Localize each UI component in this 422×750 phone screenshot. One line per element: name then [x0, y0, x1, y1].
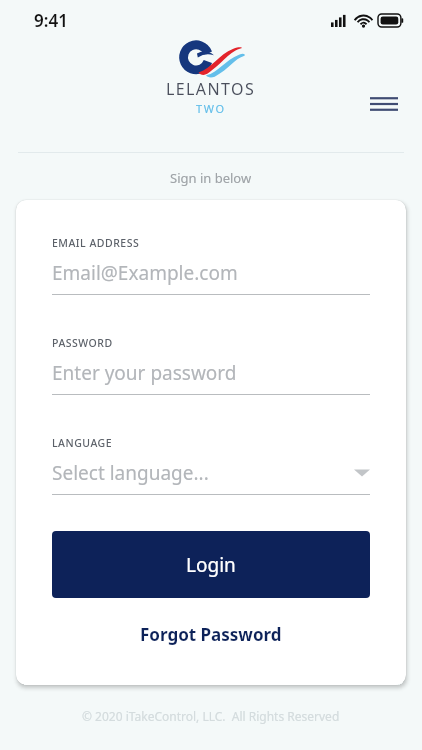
staticText: Enter your password: [52, 360, 370, 386]
button[interactable]: LANGUAGE: [52, 436, 370, 495]
staticText: LANGUAGE: [52, 436, 113, 450]
staticText: Login: [186, 552, 236, 578]
staticText: PASSWORD: [52, 336, 113, 350]
button[interactable]: Login: [52, 531, 370, 598]
staticText: Sign in below: [170, 169, 252, 187]
button[interactable]: Open menu: [360, 80, 408, 128]
staticText: TWO: [196, 101, 226, 116]
staticText: EMAIL ADDRESS: [52, 236, 140, 250]
staticText: Select language...: [52, 460, 354, 486]
button[interactable]: PASSWORD: [52, 336, 370, 395]
staticText: Forgot Password: [140, 623, 282, 646]
staticText: LELANTOS: [166, 78, 256, 100]
staticText: Email@Example.com: [52, 260, 370, 286]
button[interactable]: EMAIL ADDRESS: [52, 236, 370, 295]
staticText: © 2020 iTakeControl, LLC. All Rights Res…: [82, 708, 340, 724]
button[interactable]: Forgot Password: [52, 612, 370, 656]
staticText: 9:41: [34, 9, 68, 32]
